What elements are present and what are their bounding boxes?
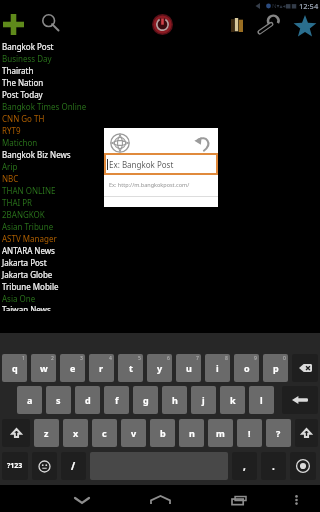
- staticText: h: [172, 394, 178, 406]
- button[interactable]: Bangkok Times Online: [0, 100, 320, 112]
- staticText: Business Day: [2, 53, 52, 64]
- button[interactable]: /: [61, 452, 86, 480]
- button[interactable]: Back: [66, 488, 98, 512]
- button[interactable]: y: [147, 354, 172, 382]
- button[interactable]: ANTARA News: [0, 244, 320, 256]
- button[interactable]: Navigate: [107, 130, 133, 156]
- button[interactable]: Undo: [190, 130, 216, 156]
- button[interactable]: u: [176, 354, 201, 382]
- button[interactable]: z: [34, 419, 59, 447]
- staticText: Tribune Mobile: [2, 281, 59, 292]
- button[interactable]: emoji: [32, 452, 57, 480]
- button[interactable]: Add: [1, 12, 26, 37]
- button[interactable]: The Nation: [0, 76, 320, 88]
- staticText: u: [186, 362, 192, 374]
- staticText: i: [216, 362, 219, 374]
- button[interactable]: d: [75, 386, 100, 414]
- button[interactable]: CNN Go TH: [0, 112, 320, 124]
- button[interactable]: Jakarta Post: [0, 256, 320, 268]
- staticText: z: [44, 427, 49, 439]
- button[interactable]: .: [261, 452, 286, 480]
- button[interactable]: j: [191, 386, 216, 414]
- button[interactable]: ASTV Manager: [0, 232, 320, 244]
- button[interactable]: p: [263, 354, 288, 382]
- staticText: Bangkok Times Online: [2, 101, 87, 112]
- staticText: f: [115, 394, 119, 406]
- button[interactable]: Arip: [0, 160, 320, 172]
- button[interactable]: q: [2, 354, 27, 382]
- button[interactable]: c: [92, 419, 117, 447]
- staticText: j: [202, 394, 205, 406]
- button[interactable]: a: [17, 386, 42, 414]
- button[interactable]: o: [234, 354, 259, 382]
- button[interactable]: RYT9: [0, 124, 320, 136]
- staticText: v: [131, 427, 137, 439]
- staticText: p: [273, 362, 279, 374]
- button[interactable]: Home: [144, 488, 176, 512]
- staticText: 12:54: [299, 1, 319, 11]
- staticText: Asian Tribune: [2, 221, 54, 232]
- button[interactable]: b: [150, 419, 175, 447]
- button[interactable]: shift: [295, 419, 318, 447]
- button[interactable]: h: [162, 386, 187, 414]
- button[interactable]: e: [60, 354, 85, 382]
- button[interactable]: t: [118, 354, 143, 382]
- button[interactable]: m: [208, 419, 233, 447]
- button[interactable]: Matichon: [0, 136, 320, 148]
- button[interactable]: x: [63, 419, 88, 447]
- button[interactable]: ,: [232, 452, 257, 480]
- button[interactable]: Post Today: [0, 88, 320, 100]
- button[interactable]: ?123: [2, 452, 28, 480]
- button[interactable]: Favorites: [293, 14, 317, 38]
- button[interactable]: Recents: [223, 488, 255, 512]
- button[interactable]: ?: [266, 419, 291, 447]
- button[interactable]: THAI PR: [0, 196, 320, 208]
- button[interactable]: k: [220, 386, 245, 414]
- button[interactable]: g: [133, 386, 158, 414]
- button[interactable]: Asian Tribune: [0, 220, 320, 232]
- staticText: NBC: [2, 173, 19, 184]
- button[interactable]: Thairath: [0, 64, 320, 76]
- button[interactable]: f: [104, 386, 129, 414]
- button[interactable]: THAN ONLINE: [0, 184, 320, 196]
- staticText: n: [189, 427, 195, 439]
- button[interactable]: w: [31, 354, 56, 382]
- button[interactable]: backspace: [292, 354, 318, 382]
- button[interactable]: s: [46, 386, 71, 414]
- button[interactable]: !: [237, 419, 262, 447]
- button[interactable]: v: [121, 419, 146, 447]
- staticText: 3: [80, 355, 83, 362]
- staticText: w: [40, 362, 48, 374]
- button[interactable]: Jakarta Globe: [0, 268, 320, 280]
- button[interactable]: Taiwan News: [0, 304, 320, 311]
- button[interactable]: Ex: Bangkok Post: [104, 153, 218, 175]
- button[interactable]: Business Day: [0, 52, 320, 64]
- button[interactable]: enter: [282, 386, 318, 414]
- button[interactable]: Bangkok Post: [0, 40, 320, 52]
- staticText: s: [56, 394, 61, 406]
- button[interactable]: mic: [290, 452, 316, 480]
- staticText: N▾▴◂■■: [272, 2, 297, 10]
- button[interactable]: More options: [286, 488, 306, 512]
- button[interactable]: Search: [38, 10, 62, 34]
- button[interactable]: Library: [228, 16, 246, 34]
- button[interactable]: NBC: [0, 172, 320, 184]
- staticText: y: [157, 362, 163, 374]
- button[interactable]: Record: [151, 13, 173, 35]
- staticText: 2BANGKOK: [2, 209, 45, 220]
- staticText: ANTARA News: [2, 245, 55, 256]
- button[interactable]: Tribune Mobile: [0, 280, 320, 292]
- button[interactable]: n: [179, 419, 204, 447]
- button[interactable]: l: [249, 386, 274, 414]
- button[interactable]: 2BANGKOK: [0, 208, 320, 220]
- button[interactable]: Settings: [255, 14, 279, 35]
- button[interactable]: shift: [2, 419, 30, 447]
- staticText: 6: [167, 355, 170, 362]
- staticText: c: [102, 427, 107, 439]
- button[interactable]: Asia One: [0, 292, 320, 304]
- staticText: /: [71, 459, 76, 473]
- button[interactable]: i: [205, 354, 230, 382]
- button[interactable]: Bangkok Biz News: [0, 148, 320, 160]
- button[interactable]: r: [89, 354, 114, 382]
